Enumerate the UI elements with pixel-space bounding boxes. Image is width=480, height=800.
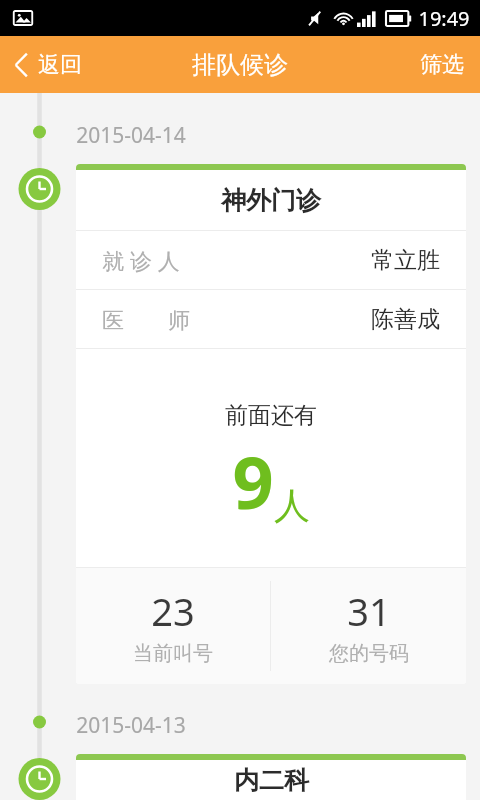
staticText: 19:49 bbox=[418, 5, 470, 32]
staticText: 就 诊 人 bbox=[102, 245, 180, 275]
staticText: 31 bbox=[347, 585, 391, 637]
staticText: 神外门诊 bbox=[221, 185, 321, 216]
staticText: 医 师 bbox=[102, 304, 190, 334]
staticText: 内二科 bbox=[234, 765, 309, 796]
staticText: 9 bbox=[232, 432, 274, 530]
staticText: 前面还有 bbox=[225, 401, 317, 430]
staticText: 2015-04-14 bbox=[76, 121, 186, 150]
button[interactable]: 返回 bbox=[0, 43, 96, 87]
staticText: 人 bbox=[274, 483, 310, 528]
staticText: 排队候诊 bbox=[192, 50, 288, 80]
button[interactable]: 筛选 bbox=[404, 41, 480, 89]
button[interactable]: 神外门诊 bbox=[76, 164, 466, 684]
staticText: 常立胜 bbox=[371, 246, 440, 275]
staticText: 23 bbox=[151, 585, 195, 637]
staticText: 当前叫号 bbox=[133, 641, 213, 666]
staticText: 返回 bbox=[38, 51, 82, 79]
staticText: 陈善成 bbox=[371, 305, 440, 334]
staticText: 2015-04-13 bbox=[76, 711, 186, 740]
staticText: 筛选 bbox=[420, 51, 464, 79]
button[interactable]: 内二科 bbox=[76, 754, 466, 800]
staticText: 您的号码 bbox=[329, 641, 409, 666]
